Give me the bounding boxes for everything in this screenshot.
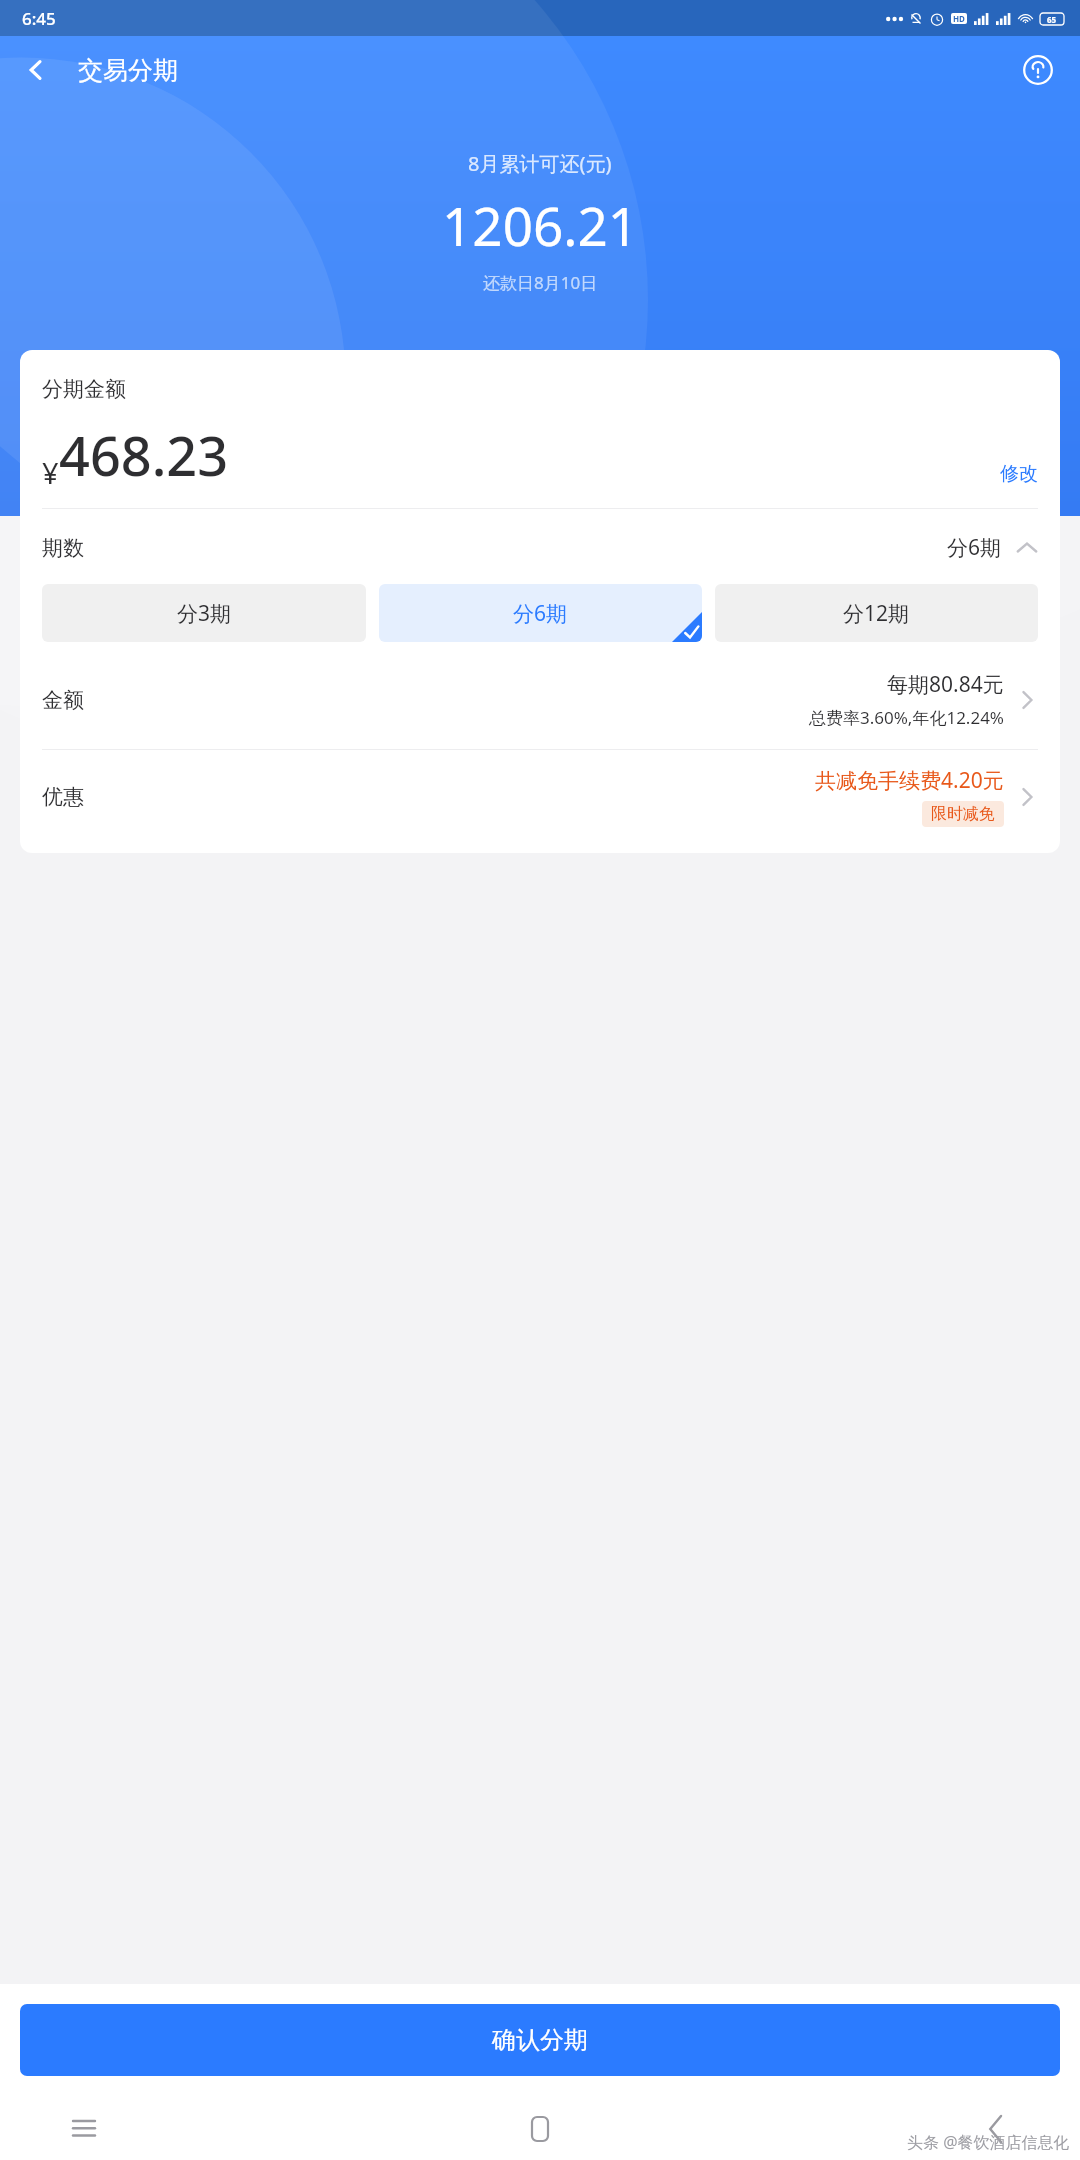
staticText: 期数: [42, 535, 84, 561]
button[interactable]: 确认分期: [20, 2004, 1060, 2076]
staticText: 共减免手续费4.20元: [815, 766, 1004, 795]
staticText: HD: [953, 13, 965, 24]
staticText: 1206.21: [442, 189, 639, 261]
button[interactable]: 分12期: [715, 584, 1038, 642]
button[interactable]: 分6期: [379, 584, 702, 642]
staticText: 头条 @餐饮酒店信息化: [907, 2131, 1070, 2153]
button[interactable]: 金额: [42, 670, 1038, 729]
button[interactable]: 修改: [992, 462, 1038, 492]
button[interactable]: Back: [968, 2101, 1024, 2157]
button[interactable]: Help: [1012, 44, 1064, 96]
staticText: 分3期: [177, 599, 232, 628]
button[interactable]: 优惠: [42, 766, 1038, 827]
staticText: 8月累计可还(元): [468, 150, 612, 177]
staticText: 交易分期: [78, 55, 178, 86]
staticText: 限时减免: [931, 804, 995, 824]
staticText: 总费率3.60%,年化12.24%: [809, 706, 1004, 729]
button[interactable]: Recent apps: [56, 2101, 112, 2157]
button[interactable]: Back: [8, 42, 64, 98]
staticText: 每期80.84元: [887, 670, 1004, 699]
staticText: 分6期: [513, 599, 568, 628]
staticText: 6:45: [22, 7, 56, 30]
button[interactable]: Home: [512, 2101, 568, 2157]
staticText: 金额: [42, 687, 84, 713]
staticText: 分6期: [947, 533, 1002, 562]
staticText: 468.23: [59, 418, 229, 492]
staticText: 分12期: [843, 599, 910, 628]
staticText: 分期金额: [42, 376, 126, 402]
staticText: ¥: [42, 453, 59, 492]
button[interactable]: 分3期: [42, 584, 366, 642]
staticText: 确认分期: [492, 2025, 588, 2055]
staticText: 修改: [1000, 462, 1038, 486]
staticText: 优惠: [42, 784, 84, 810]
staticText: 65: [1047, 14, 1057, 25]
button[interactable]: 期数: [42, 533, 1038, 562]
staticText: 还款日8月10日: [483, 271, 598, 294]
